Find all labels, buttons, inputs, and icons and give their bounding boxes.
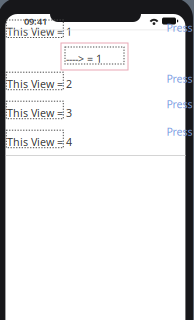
staticText: ----> = 1 [66,51,102,66]
staticText: This View = 1 [7,24,72,39]
staticText: Press [166,124,192,139]
button[interactable]: Press [166,124,192,139]
staticText: This View = 3 [7,106,72,120]
staticText: This View = 4 [7,135,72,149]
staticText: This View = 2 [7,77,72,91]
staticText: Press [166,97,192,111]
staticText: Press [166,20,192,35]
button[interactable]: Press [166,20,192,35]
button[interactable]: Press [166,97,192,111]
staticText: Press [166,71,192,86]
staticText: 09:41 [24,15,47,27]
button[interactable]: Press [166,71,192,86]
